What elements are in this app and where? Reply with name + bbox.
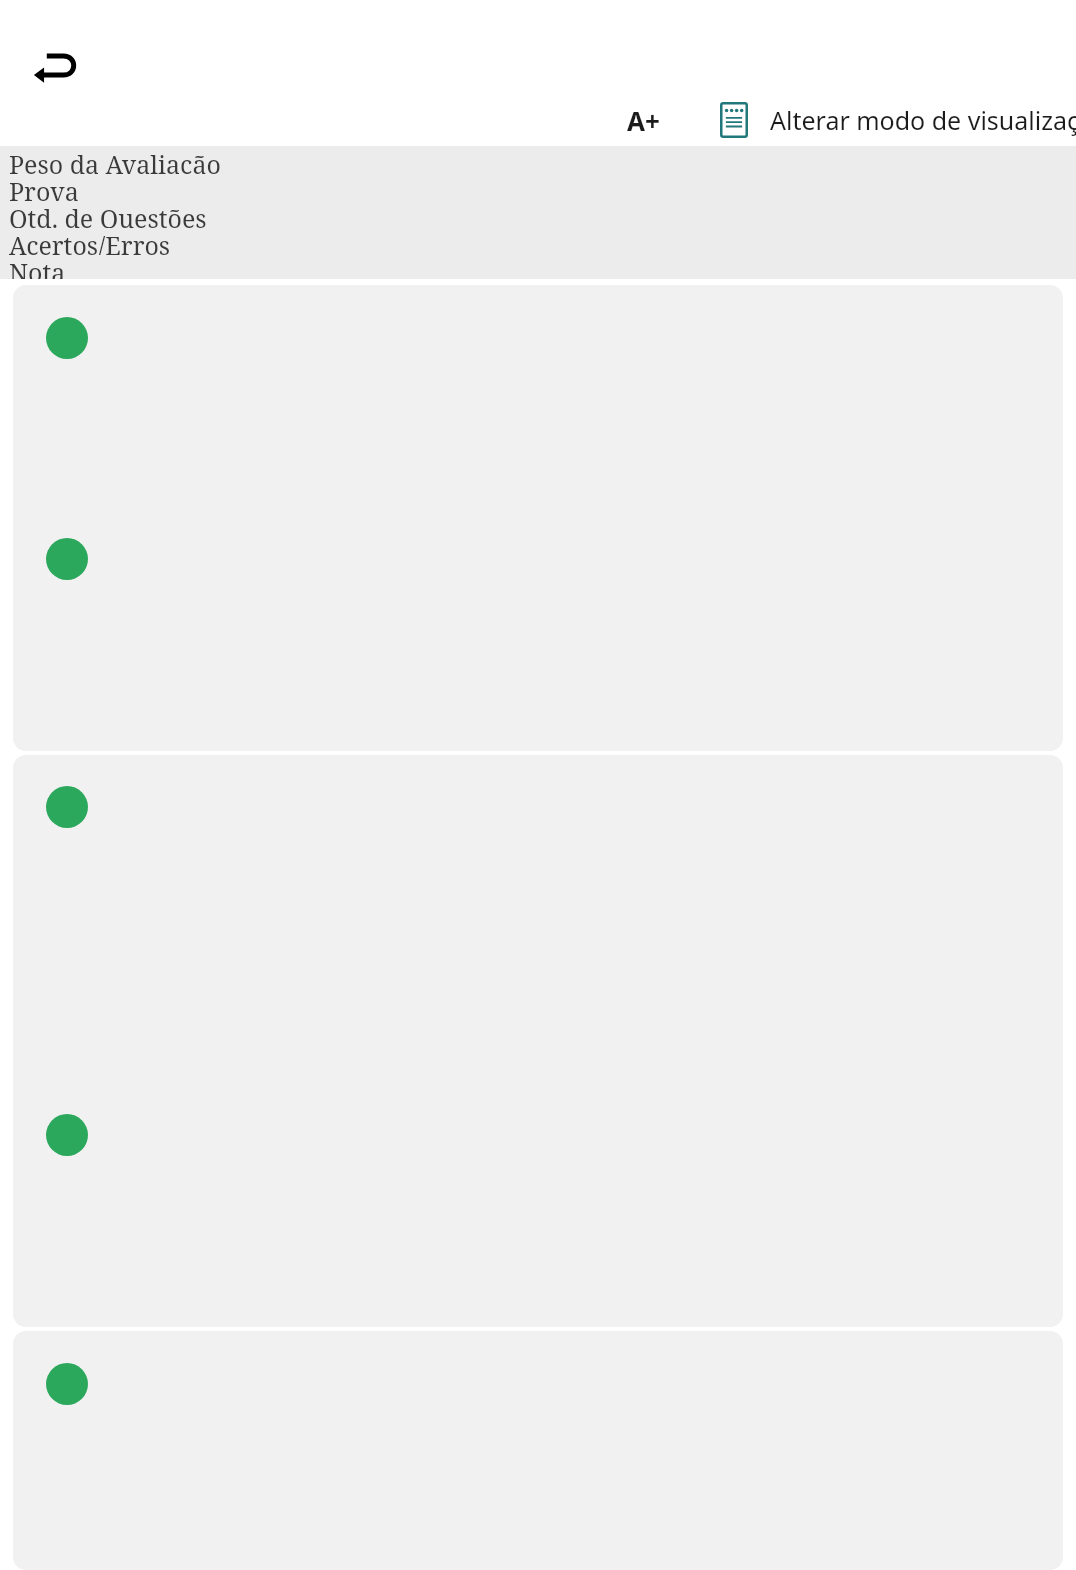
staticText: Qtd. de Questões bbox=[9, 201, 207, 228]
staticText: Acertos/Erros bbox=[9, 228, 171, 255]
button[interactable] bbox=[13, 285, 1063, 751]
staticText: Alterar modo de visualização bbox=[770, 103, 1076, 137]
staticText: A+ bbox=[627, 103, 660, 138]
button[interactable]: A+ bbox=[596, 93, 690, 147]
staticText: Prova bbox=[9, 174, 79, 201]
staticText: Peso da Avaliação bbox=[9, 147, 221, 174]
button[interactable]: Alterar modo de visualização bbox=[702, 93, 1076, 147]
button[interactable] bbox=[13, 1331, 1063, 1570]
staticText: Nota bbox=[9, 255, 66, 279]
button[interactable]: Voltar bbox=[20, 40, 92, 98]
button[interactable] bbox=[13, 755, 1063, 1327]
